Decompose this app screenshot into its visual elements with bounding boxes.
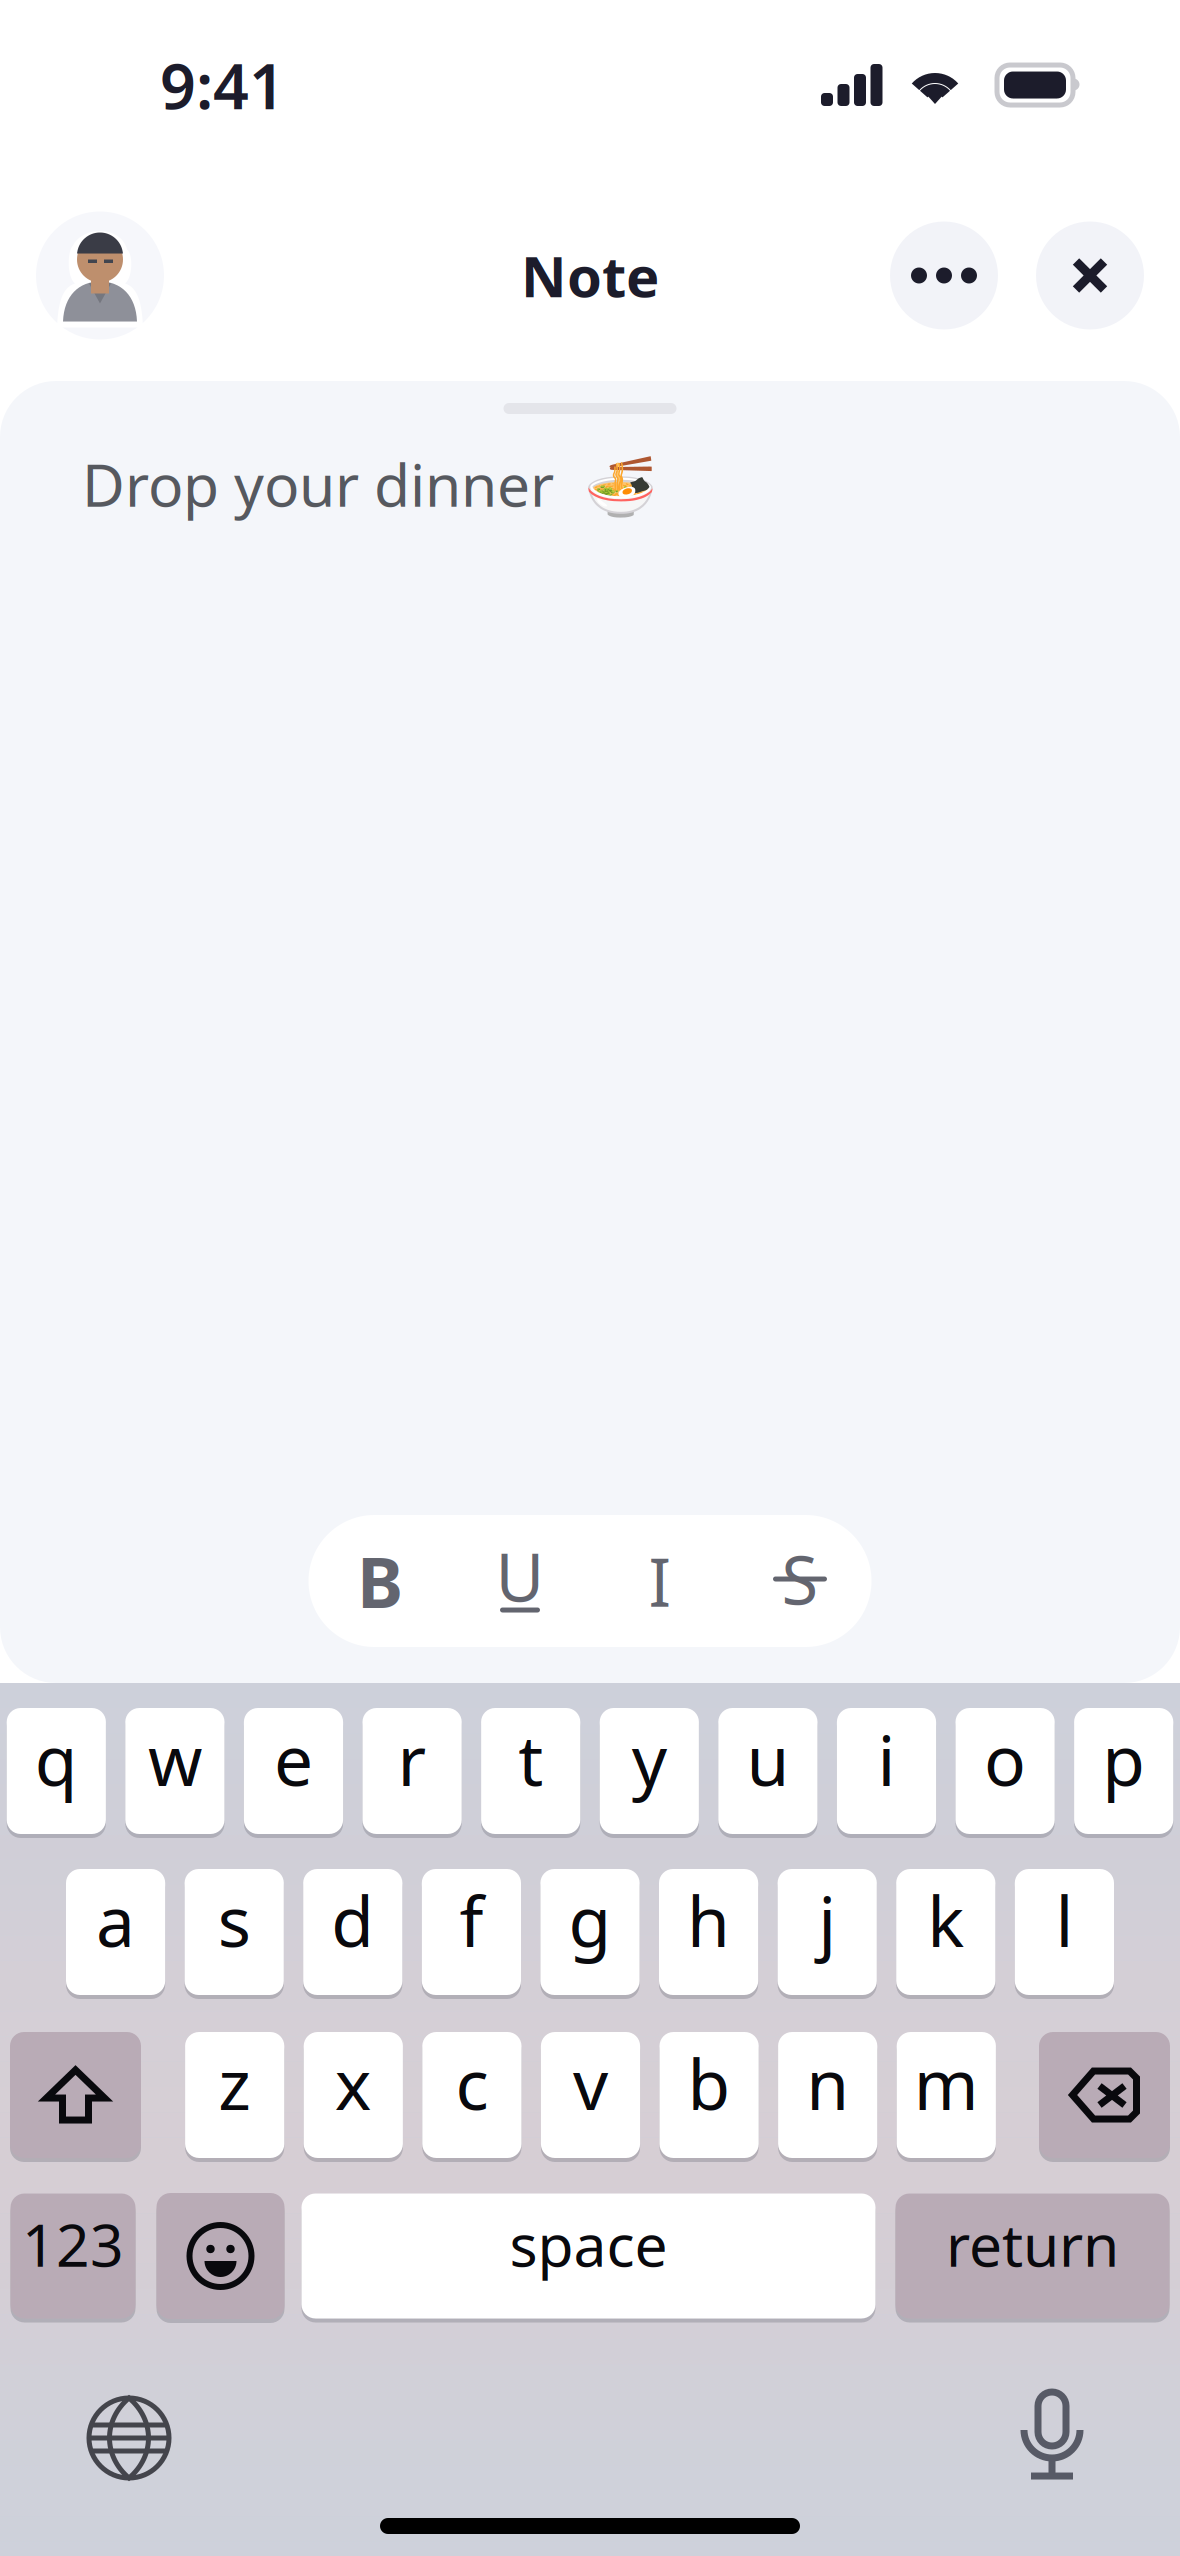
staticText: space xyxy=(509,2205,667,2283)
button[interactable]: f xyxy=(422,1869,521,1995)
button[interactable]: n xyxy=(778,2032,877,2158)
staticText: c xyxy=(455,2037,488,2129)
staticText: x xyxy=(335,2037,372,2129)
button[interactable]: j xyxy=(778,1869,877,1995)
staticText: t xyxy=(518,1713,543,1805)
staticText: I xyxy=(648,1537,671,1625)
button[interactable]: r xyxy=(362,1708,462,1834)
staticText: e xyxy=(274,1713,313,1805)
button[interactable]: m xyxy=(897,2032,996,2158)
staticText: b xyxy=(688,2037,731,2129)
button[interactable]: Underline xyxy=(450,1515,590,1647)
staticText: g xyxy=(568,1874,611,1966)
staticText: Drop your dinner 🍜 xyxy=(82,445,657,523)
button[interactable]: a xyxy=(66,1869,165,1995)
staticText: s xyxy=(218,1874,251,1966)
button[interactable]: g xyxy=(540,1869,640,1995)
button[interactable]: Profile xyxy=(36,211,164,339)
staticText: 123 xyxy=(22,2205,124,2283)
staticText: return xyxy=(946,2205,1119,2283)
button[interactable]: i xyxy=(837,1708,936,1834)
button[interactable]: v xyxy=(541,2032,640,2158)
button[interactable]: z xyxy=(185,2032,284,2158)
button[interactable]: 123 xyxy=(10,2193,135,2318)
staticText: a xyxy=(96,1874,135,1966)
staticText: U xyxy=(495,1532,544,1620)
staticText: d xyxy=(331,1874,374,1966)
staticText: w xyxy=(148,1713,202,1805)
button[interactable]: Emoji xyxy=(156,2193,284,2319)
staticText: y xyxy=(632,1713,667,1805)
button[interactable]: Dictate xyxy=(1021,2390,1083,2486)
button[interactable]: q xyxy=(7,1708,106,1834)
staticText: o xyxy=(984,1713,1026,1805)
button[interactable]: space xyxy=(301,2193,875,2318)
button[interactable]: s xyxy=(185,1869,284,1995)
button[interactable]: Strikethrough xyxy=(730,1515,870,1647)
button[interactable]: More options xyxy=(890,221,998,329)
staticText: z xyxy=(218,2037,251,2129)
button[interactable]: u xyxy=(718,1708,817,1834)
button[interactable]: b xyxy=(659,2032,759,2158)
button[interactable]: d xyxy=(303,1869,402,1995)
button[interactable]: Shift xyxy=(10,2032,141,2158)
button[interactable]: o xyxy=(955,1708,1055,1834)
staticText: i xyxy=(877,1713,895,1805)
button[interactable]: Italic xyxy=(590,1515,730,1647)
staticText: h xyxy=(687,1874,730,1966)
button[interactable]: x xyxy=(304,2032,403,2158)
button[interactable]: w xyxy=(125,1708,224,1834)
staticText: S xyxy=(781,1535,818,1623)
button[interactable]: e xyxy=(244,1708,343,1834)
button[interactable]: Delete xyxy=(1039,2032,1170,2158)
button[interactable]: c xyxy=(422,2032,521,2158)
staticText: p xyxy=(1102,1713,1145,1805)
staticText: f xyxy=(459,1874,483,1966)
staticText: B xyxy=(357,1535,403,1627)
staticText: 9:41 xyxy=(160,43,285,127)
staticText: j xyxy=(818,1874,836,1966)
staticText: Note xyxy=(521,238,659,313)
button[interactable]: t xyxy=(481,1708,580,1834)
staticText: q xyxy=(35,1713,78,1805)
button[interactable]: return xyxy=(895,2193,1169,2318)
staticText: v xyxy=(573,2037,608,2129)
staticText: l xyxy=(1055,1874,1073,1966)
button[interactable]: p xyxy=(1074,1708,1173,1834)
button[interactable]: Close xyxy=(1036,221,1144,329)
staticText: n xyxy=(806,2037,849,2129)
button[interactable]: Bold xyxy=(310,1515,450,1647)
staticText: k xyxy=(927,1874,964,1966)
button[interactable]: k xyxy=(896,1869,995,1995)
button[interactable]: Switch keyboard xyxy=(87,2396,171,2480)
staticText: u xyxy=(746,1713,789,1805)
staticText: r xyxy=(398,1713,427,1805)
staticText: m xyxy=(914,2037,979,2129)
button[interactable]: y xyxy=(600,1708,699,1834)
button[interactable]: h xyxy=(659,1869,758,1995)
button[interactable]: l xyxy=(1015,1869,1114,1995)
